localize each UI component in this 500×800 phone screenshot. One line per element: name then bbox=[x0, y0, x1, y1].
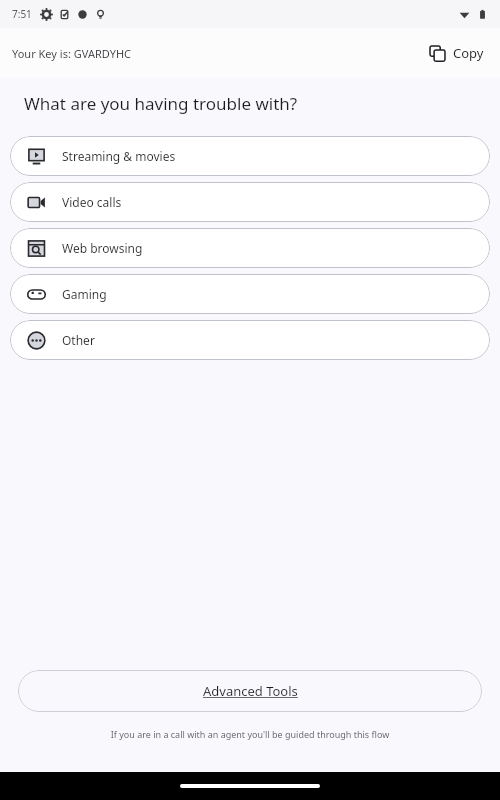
staticText: Copy bbox=[453, 44, 484, 62]
button[interactable]: Advanced Tools bbox=[18, 670, 482, 712]
staticText: Gaming bbox=[62, 286, 107, 302]
staticText: Web browsing bbox=[62, 240, 143, 256]
button[interactable]: Copy bbox=[425, 40, 488, 66]
staticText: Video calls bbox=[62, 194, 122, 210]
button[interactable]: Other bbox=[10, 320, 490, 360]
staticText: 7:51 bbox=[12, 7, 32, 21]
staticText: Streaming & movies bbox=[62, 148, 176, 164]
staticText: If you are in a call with an agent you'l… bbox=[16, 728, 484, 740]
staticText: Other bbox=[62, 332, 95, 348]
staticText: Advanced Tools bbox=[203, 682, 298, 700]
button[interactable]: Video calls bbox=[10, 182, 490, 222]
staticText: What are you having trouble with? bbox=[24, 92, 298, 115]
button[interactable]: Streaming & movies bbox=[10, 136, 490, 176]
staticText: Your Key is: GVARDYHC bbox=[12, 46, 131, 61]
button[interactable]: Gaming bbox=[10, 274, 490, 314]
button[interactable]: Web browsing bbox=[10, 228, 490, 268]
